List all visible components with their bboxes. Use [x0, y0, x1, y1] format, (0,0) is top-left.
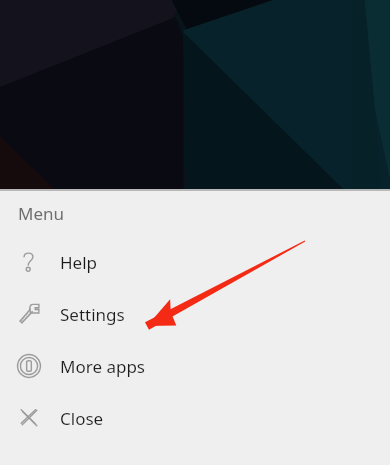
staticText: Close: [60, 407, 104, 430]
button[interactable]: More apps: [0, 340, 390, 392]
button[interactable]: Settings: [0, 288, 390, 340]
staticText: Help: [60, 251, 98, 274]
other: More apps: [16, 353, 42, 379]
staticText: Settings: [60, 303, 125, 326]
other: Close: [16, 405, 42, 431]
button[interactable]: Close: [0, 392, 390, 444]
other: Help: [16, 249, 42, 275]
button[interactable]: Help: [0, 236, 390, 288]
staticText: More apps: [60, 355, 145, 378]
other: Settings: [16, 301, 42, 327]
staticText: Menu: [18, 202, 65, 225]
